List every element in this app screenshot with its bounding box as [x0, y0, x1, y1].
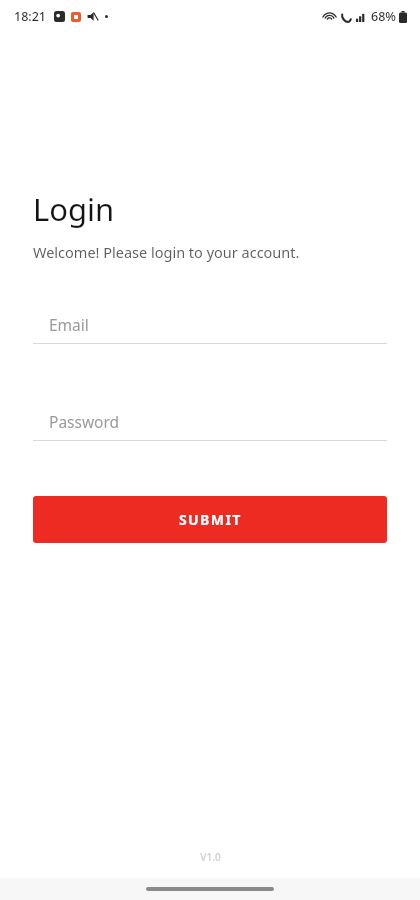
staticText: 18:21 [14, 8, 47, 25]
staticText: SUBMIT [179, 510, 242, 529]
staticText: Login [33, 188, 115, 230]
staticText: Welcome! Please login to your account. [33, 242, 300, 262]
button[interactable]: Password [33, 402, 387, 441]
button[interactable]: Email [33, 305, 387, 344]
staticText: 68% [371, 8, 396, 25]
staticText: Password [49, 411, 120, 432]
staticText: V1.0 [200, 850, 221, 864]
staticText: Email [49, 314, 89, 335]
button[interactable]: SUBMIT [33, 496, 387, 543]
